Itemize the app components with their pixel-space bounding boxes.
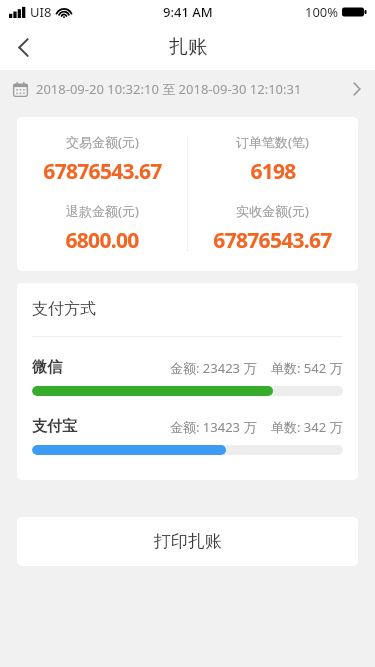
staticText: 6800.00 — [65, 226, 139, 255]
staticText: 支付宝 — [32, 417, 77, 436]
staticText: 67876543.67 — [43, 157, 162, 186]
staticText: 67876543.67 — [213, 226, 332, 255]
staticText: 扎账 — [169, 35, 207, 59]
button[interactable]: Back — [0, 24, 46, 70]
staticText: UI8 — [30, 3, 52, 21]
staticText: 单数: 342 万 — [271, 418, 343, 436]
staticText: 9:41 AM — [163, 3, 213, 21]
staticText: 打印扎账 — [154, 531, 222, 552]
staticText: 订单笔数(笔) — [236, 133, 309, 151]
staticText: 退款金额(元) — [66, 202, 139, 220]
button[interactable]: 支付宝 — [32, 396, 343, 455]
staticText: 金额: 13423 万 — [170, 418, 257, 436]
staticText: 2018-09-20 10:32:10 至 2018-09-30 12:10:3… — [36, 80, 302, 98]
staticText: 6198 — [250, 157, 296, 186]
staticText: 交易金额(元) — [66, 133, 139, 151]
button[interactable]: 微信 — [32, 337, 343, 396]
button[interactable]: 交易金额(元) — [17, 117, 358, 271]
staticText: 金额: 23423 万 — [170, 359, 257, 377]
button[interactable]: 2018-09-20 10:32:10 至 2018-09-30 12:10:3… — [0, 70, 375, 108]
staticText: 支付方式 — [32, 299, 96, 319]
staticText: 微信 — [32, 358, 62, 377]
staticText: 单数: 542 万 — [271, 359, 343, 377]
staticText: 100% — [305, 3, 339, 21]
button[interactable]: 打印扎账 — [17, 517, 358, 566]
staticText: 实收金额(元) — [236, 202, 309, 220]
